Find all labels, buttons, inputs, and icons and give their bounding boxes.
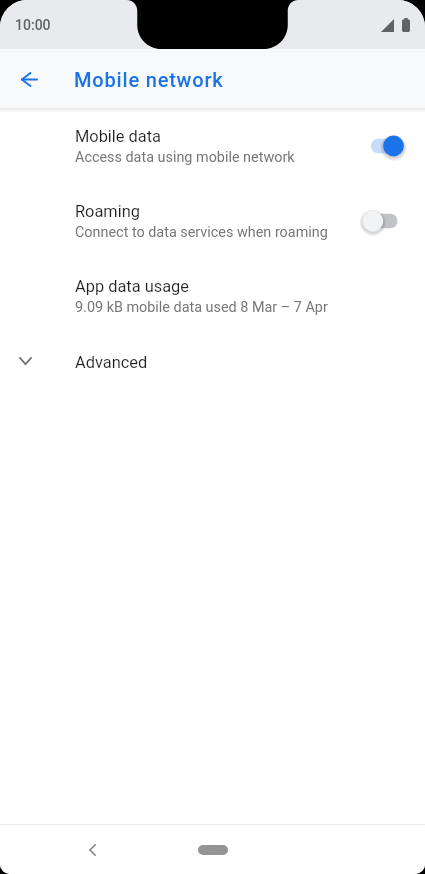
staticText: Connect to data services when roaming <box>75 224 328 241</box>
staticText: 9.09 kB mobile data used 8 Mar – 7 Apr <box>75 299 328 316</box>
button[interactable]: Home <box>185 835 241 865</box>
button[interactable]: Mobile data <box>0 108 425 183</box>
button[interactable]: Advanced <box>0 333 425 389</box>
staticText: Advanced <box>75 353 148 372</box>
staticText: Roaming <box>75 202 140 221</box>
button[interactable]: Roaming <box>0 183 425 258</box>
staticText: Access data using mobile network <box>75 149 295 166</box>
button[interactable]: App data usage <box>0 258 425 333</box>
button[interactable]: Back <box>76 834 108 866</box>
staticText: App data usage <box>75 277 189 296</box>
staticText: Mobile network <box>74 68 224 91</box>
button[interactable]: Navigate up <box>5 55 53 103</box>
staticText: 10:00 <box>15 17 51 33</box>
staticText: Mobile data <box>75 127 162 146</box>
